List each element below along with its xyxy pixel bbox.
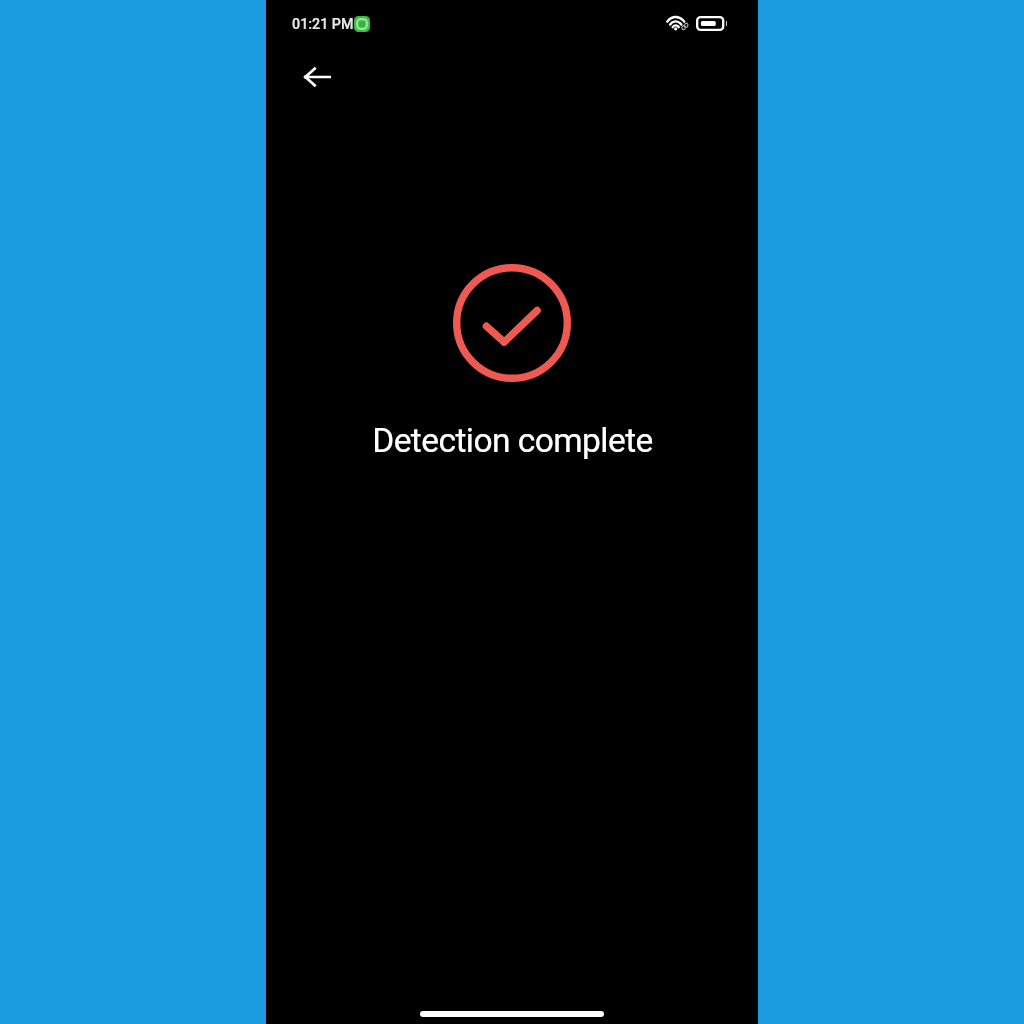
staticText: Detection complete [372, 421, 653, 460]
staticText: 01:21 PM [292, 16, 354, 33]
button[interactable]: Back [293, 53, 341, 101]
